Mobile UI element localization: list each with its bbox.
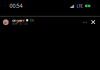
button[interactable]: More options: [83, 21, 87, 24]
button[interactable]: Profile photo: [3, 19, 9, 25]
staticText: 1h: [29, 18, 33, 23]
staticText: 00:54: [9, 2, 22, 9]
staticText: onyarr: [12, 18, 25, 23]
staticText: 원본 오디오: [12, 22, 28, 25]
button[interactable]: onyarr: [12, 18, 33, 23]
staticText: LTE: [76, 3, 82, 8]
button[interactable]: Close: [91, 20, 95, 24]
